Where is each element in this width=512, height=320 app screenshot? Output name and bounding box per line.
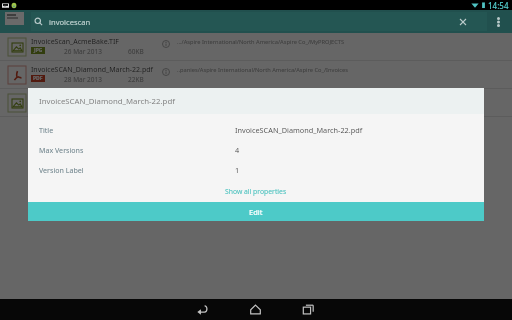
staticText: InvoiceSCAN_Diamond_March-22.pdf — [235, 125, 363, 135]
button[interactable]: Recent apps — [282, 299, 335, 320]
button[interactable]: Home — [229, 299, 282, 320]
button[interactable]: Info — [159, 65, 173, 79]
staticText: 60KB — [128, 47, 144, 56]
staticText: InvoiceSCAN_Diamond_March-22.pdf — [39, 96, 175, 107]
button[interactable]: Info — [159, 93, 173, 107]
staticText: Max Versions — [39, 145, 235, 155]
button[interactable]: InvoiceScan_AcmeBake2.TIF — [0, 89, 512, 117]
staticText: 18KB — [128, 103, 144, 112]
staticText: 28 Mar 2013 — [64, 75, 102, 84]
button[interactable]: Info — [159, 37, 173, 51]
button[interactable]: Edit — [28, 202, 484, 221]
staticText: Version Label — [39, 165, 235, 175]
staticText: invoicescan — [49, 17, 91, 27]
staticText: PDF — [33, 75, 43, 82]
button[interactable]: InvoiceSCAN_Diamond_March-22.pdf — [0, 61, 512, 89]
staticText: 26 Mar 2013 — [64, 47, 102, 56]
staticText: Show all properties — [225, 187, 287, 196]
button[interactable]: Back — [176, 299, 229, 320]
button[interactable]: More options — [487, 10, 509, 33]
staticText: 26 Mar 2013 — [64, 103, 102, 112]
staticText: ..panies/Aspire International/North Amer… — [177, 66, 349, 74]
button[interactable]: Clear search — [452, 10, 474, 33]
staticText: InvoiceScan_AcmeBake.TIF — [31, 37, 119, 47]
staticText: 22KB — [128, 75, 144, 84]
staticText: Title — [39, 125, 235, 135]
button[interactable]: Show all properties — [28, 184, 484, 199]
staticText: 1 — [235, 165, 240, 175]
button[interactable]: InvoiceScan_AcmeBake.TIF — [0, 33, 512, 61]
staticText: JPG — [34, 47, 43, 54]
staticText: JPG — [34, 103, 43, 110]
staticText: 14:54 — [488, 0, 509, 10]
staticText: 4 — [235, 145, 240, 155]
button[interactable] — [31, 12, 487, 31]
staticText: Edit — [249, 207, 263, 217]
staticText: .../Aspire International/North America/A… — [177, 38, 345, 46]
button[interactable]: Navigate up — [0, 10, 31, 33]
staticText: InvoiceScan_AcmeBake2.TIF — [31, 93, 123, 103]
staticText: InvoiceSCAN_Diamond_March-22.pdf — [31, 65, 154, 75]
